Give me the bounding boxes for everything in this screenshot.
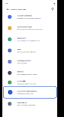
staticText: 1:48 <box>5 2 8 5</box>
button[interactable]: Watch software update <box>2 86 57 98</box>
button[interactable]: Device care <box>2 34 57 45</box>
staticText: Vision, hearing, interaction <box>17 83 36 85</box>
button[interactable]: Back <box>5 7 10 11</box>
button[interactable]: General <box>2 67 57 78</box>
staticText: Storage, battery, diagnostics <box>17 40 40 42</box>
button[interactable]: Apps <box>2 45 57 56</box>
staticText: Advanced settings <box>17 26 32 28</box>
staticText: Watch settings <box>11 8 26 10</box>
staticText: ⚲ <box>51 7 54 11</box>
staticText: Watch software update <box>17 90 37 92</box>
staticText: Accessibility <box>17 80 26 82</box>
staticText: Apps <box>17 48 21 51</box>
staticText: Google account, app permissions <box>17 17 41 19</box>
staticText: Date, time, languages, region <box>17 73 37 75</box>
staticText: About watch <box>17 101 27 104</box>
button[interactable]: Search <box>50 7 55 11</box>
staticText: Device care <box>17 37 26 39</box>
button[interactable]: Accounts and apps <box>2 11 57 22</box>
button[interactable]: Advanced settings <box>2 22 57 34</box>
button[interactable]: Accessibility <box>2 78 57 86</box>
staticText: Default apps, permissions <box>17 51 36 53</box>
staticText: Photos, music <box>17 62 27 64</box>
button[interactable]: About watch <box>2 98 57 109</box>
button[interactable]: Manage content <box>2 56 57 67</box>
staticText: Gestures, screenshots, restart <box>17 29 43 31</box>
staticText: Downloads and installs <box>17 93 33 95</box>
staticText: Accounts and apps <box>17 14 32 17</box>
staticText: General <box>17 70 23 73</box>
staticText: ← <box>6 7 9 11</box>
staticText: Manage content <box>17 59 31 62</box>
staticText: ▲ ▮ <box>53 2 55 4</box>
staticText: Watch name, serial number <box>17 104 36 106</box>
